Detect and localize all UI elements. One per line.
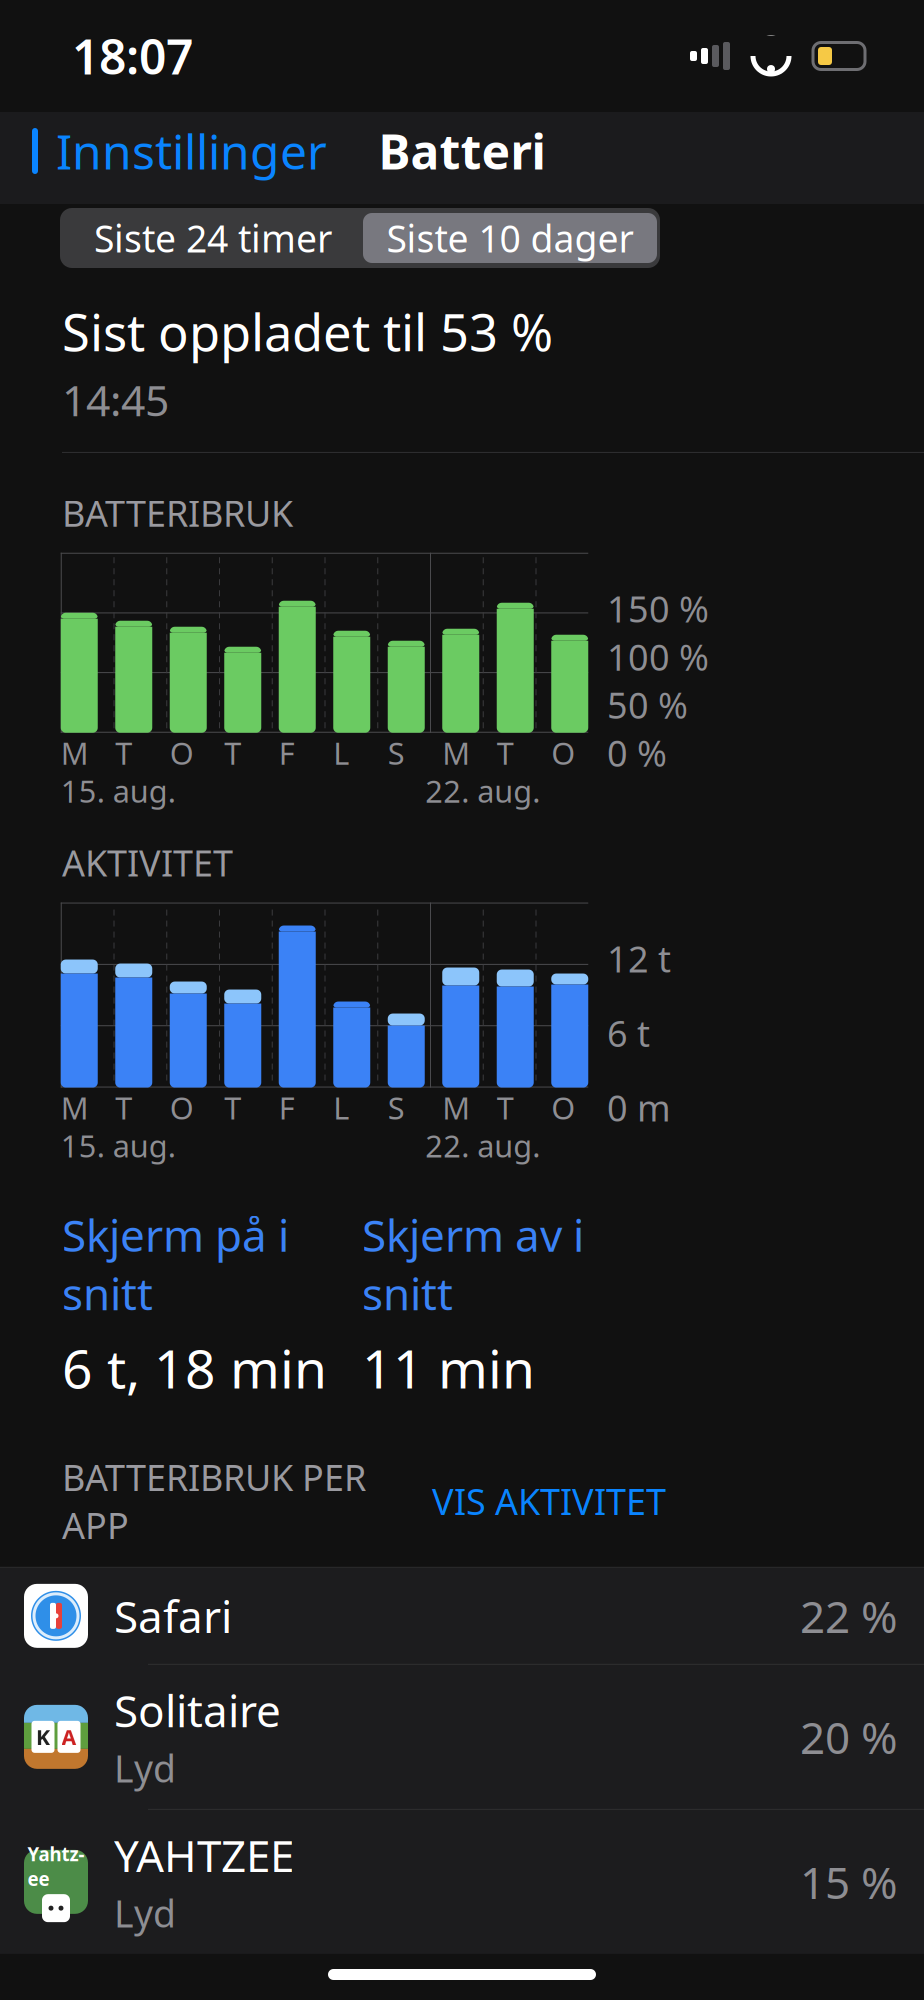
staticText: O (551, 1087, 575, 1128)
staticText: Batteri (378, 119, 545, 183)
staticText: 150 % (607, 585, 709, 633)
staticText: M (442, 1087, 470, 1128)
staticText: Yahtzee (27, 1842, 84, 1891)
staticText: F (279, 1087, 295, 1128)
staticText: 6 t, 18 min (62, 1332, 327, 1403)
staticText: Sist oppladet til 53 % (62, 298, 553, 365)
button[interactable]: Yahtzee (0, 1810, 924, 1954)
staticText: 6 t (607, 1009, 650, 1057)
staticText: 100 % (607, 633, 709, 681)
staticText: YAHTZEE (114, 1826, 294, 1884)
button[interactable]: Skjerm på i snitt (62, 1206, 362, 1403)
button[interactable]: Siste 24 timer (60, 208, 660, 268)
staticText: Skjerm på i snitt (62, 1206, 289, 1322)
staticText: Siste 10 dager (386, 213, 633, 263)
staticText: Skjerm av i snitt (362, 1206, 584, 1322)
staticText: 22. aug. (425, 770, 540, 811)
staticText: BATTERIBRUK PER APP (62, 1453, 366, 1549)
staticText: Safari (114, 1587, 232, 1645)
staticText: 14:45 (62, 371, 169, 428)
staticText: 20 % (800, 1708, 898, 1766)
staticText: 22. aug. (425, 1125, 540, 1166)
staticText: 0 % (607, 729, 667, 777)
staticText: T (115, 732, 132, 773)
staticText: T (115, 1087, 132, 1128)
staticText: BATTERIBRUK (62, 489, 293, 537)
staticText: 15 % (800, 1853, 898, 1911)
staticText: O (170, 732, 194, 773)
staticText: A (61, 1723, 76, 1751)
staticText: 18:07 (72, 24, 193, 88)
staticText: S (388, 1087, 405, 1128)
staticText: L (333, 1087, 349, 1128)
staticText: F (279, 732, 295, 773)
staticText: O (170, 1087, 194, 1128)
staticText: L (333, 732, 349, 773)
staticText: Innstillinger (56, 119, 327, 183)
staticText: Siste 24 timer (94, 213, 332, 263)
staticText: M (61, 732, 89, 773)
staticText: S (388, 732, 405, 773)
staticText: O (551, 732, 575, 773)
staticText: Solitaire (114, 1681, 281, 1739)
staticText: 15. aug. (61, 1125, 176, 1166)
staticText: 50 % (607, 681, 688, 729)
staticText: 11 min (362, 1332, 535, 1403)
staticText: 0 m (607, 1084, 671, 1132)
staticText: T (497, 1087, 514, 1128)
staticText: 15. aug. (61, 770, 176, 811)
staticText: T (224, 732, 241, 773)
staticText: AKTIVITET (62, 839, 233, 887)
staticText: VIS AKTIVITET (432, 1477, 666, 1525)
staticText: T (497, 732, 514, 773)
staticText: T (224, 1087, 241, 1128)
staticText: K (36, 1723, 50, 1751)
button[interactable]: Skjerm av i snitt (362, 1206, 662, 1403)
staticText: Lyd (114, 1743, 176, 1793)
staticText: Lyd (114, 1888, 176, 1938)
staticText: M (442, 732, 470, 773)
button[interactable]: K (0, 1665, 924, 1809)
staticText: M (61, 1087, 89, 1128)
staticText: 22 % (800, 1587, 898, 1645)
button[interactable]: Safari (0, 1568, 924, 1664)
button[interactable]: VIS AKTIVITET (432, 1471, 666, 1531)
staticText: 12 t (607, 935, 671, 982)
button[interactable]: Innstillinger (0, 111, 327, 191)
